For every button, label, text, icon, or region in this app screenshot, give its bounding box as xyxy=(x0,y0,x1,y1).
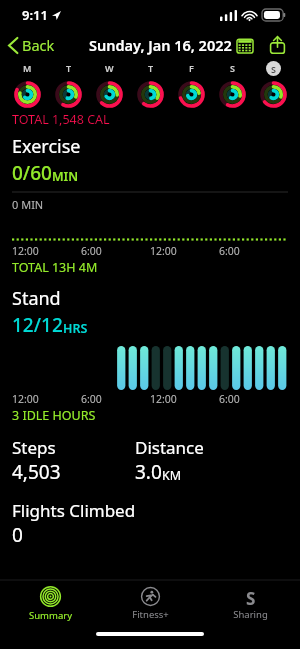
staticText: 9:11 xyxy=(22,6,48,24)
staticText: Sunday, Jan 16, 2022 xyxy=(89,35,232,55)
staticText: Summary xyxy=(29,609,72,622)
staticText: 6:00 xyxy=(219,244,240,258)
staticText: 12:00 xyxy=(150,392,177,406)
staticText: 6:00 xyxy=(219,392,240,406)
button[interactable]: Steps xyxy=(12,436,135,485)
staticText: TOTAL 13H 4M xyxy=(12,259,98,276)
button[interactable]: Calendar xyxy=(232,32,258,58)
staticText: W xyxy=(105,62,114,74)
button[interactable]: Share xyxy=(264,32,290,58)
button[interactable]: Distance xyxy=(135,436,288,485)
button[interactable]: M xyxy=(6,60,48,76)
staticText: Sharing xyxy=(233,608,268,621)
button[interactable] xyxy=(48,79,89,109)
button[interactable] xyxy=(212,79,253,109)
staticText: 4,503 xyxy=(12,459,61,485)
button[interactable]: F xyxy=(171,60,212,76)
button[interactable] xyxy=(171,79,212,109)
staticText: 12:00 xyxy=(150,244,177,258)
button[interactable]: Back xyxy=(8,35,55,55)
staticText: Flights Climbed xyxy=(12,499,136,522)
staticText: Back xyxy=(22,35,55,55)
staticText: TOTAL 1,548 CAL xyxy=(12,111,110,128)
staticText: M xyxy=(23,62,32,74)
staticText: Stand xyxy=(12,286,61,311)
staticText: Exercise xyxy=(12,134,81,159)
staticText: HRS xyxy=(63,320,88,337)
staticText: KM xyxy=(162,467,182,484)
button[interactable]: Stand xyxy=(0,286,300,424)
button[interactable]: Summary xyxy=(0,586,100,622)
staticText: S xyxy=(271,63,276,75)
staticText: 0 xyxy=(12,522,23,548)
staticText: 12:00 xyxy=(12,244,39,258)
button[interactable]: T xyxy=(130,60,171,76)
button[interactable]: S xyxy=(212,60,253,76)
button[interactable] xyxy=(253,79,294,109)
button[interactable]: Fitness+ xyxy=(100,587,200,621)
staticText: MIN xyxy=(52,168,79,185)
button[interactable] xyxy=(89,79,130,109)
staticText: 3.0 xyxy=(135,459,162,485)
staticText: T xyxy=(148,62,154,74)
staticText: S xyxy=(230,62,235,74)
staticText: Steps xyxy=(12,436,56,459)
button[interactable]: Flights Climbed xyxy=(12,499,288,548)
staticText: T xyxy=(66,62,72,74)
staticText: 6:00 xyxy=(81,392,102,406)
button[interactable] xyxy=(130,79,171,109)
button[interactable]: T xyxy=(48,60,89,76)
button[interactable]: Exercise xyxy=(0,134,300,276)
staticText: F xyxy=(189,62,194,74)
staticText: S xyxy=(246,587,256,606)
staticText: 0/60 xyxy=(12,160,52,186)
staticText: 12:00 xyxy=(12,392,39,406)
staticText: 6:00 xyxy=(81,244,102,258)
button[interactable]: S xyxy=(200,587,300,621)
button[interactable]: S xyxy=(253,60,294,76)
staticText: Fitness+ xyxy=(132,608,169,621)
staticText: 0 MIN xyxy=(12,197,44,212)
button[interactable]: W xyxy=(89,60,130,76)
staticText: 3 IDLE HOURS xyxy=(12,407,96,424)
staticText: 12/12 xyxy=(12,312,63,338)
staticText: Distance xyxy=(135,436,204,459)
button[interactable] xyxy=(6,79,48,109)
